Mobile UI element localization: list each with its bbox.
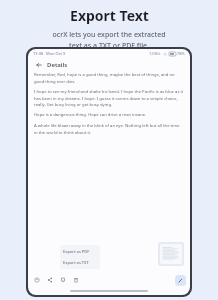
staticText: Details	[47, 61, 68, 69]
staticText: Export as PDF	[63, 249, 90, 254]
staticText: Export as TXT	[63, 260, 89, 265]
button[interactable]: Bookmark	[58, 275, 68, 285]
button[interactable]: Export as TXT	[60, 259, 100, 266]
button[interactable]: Delete	[71, 275, 81, 285]
button[interactable]: Document preview	[158, 242, 184, 266]
button[interactable]: Export as PDF	[60, 248, 100, 255]
staticText: I hope to see my friend and shake his ha…	[34, 89, 184, 107]
staticText: A whole life blown away in the blink of …	[34, 123, 184, 135]
button[interactable]: Copy	[32, 275, 42, 285]
staticText: Export Text	[70, 6, 149, 25]
button[interactable]: Share	[45, 275, 55, 285]
button[interactable]: Back	[33, 59, 44, 70]
staticText: Hope is a dangerous thing. Hope can driv…	[34, 112, 147, 118]
staticText: 1.0K/s	[149, 51, 161, 56]
staticText: ocrX lets you export the extracted text …	[52, 30, 166, 50]
staticText: Mon Oct 9	[46, 51, 66, 56]
staticText: Remember, Red, hope is a good thing, may…	[34, 72, 184, 84]
staticText: 11:36	[33, 51, 44, 56]
button[interactable]: Edit	[175, 275, 186, 286]
staticText: 78%	[177, 51, 185, 56]
